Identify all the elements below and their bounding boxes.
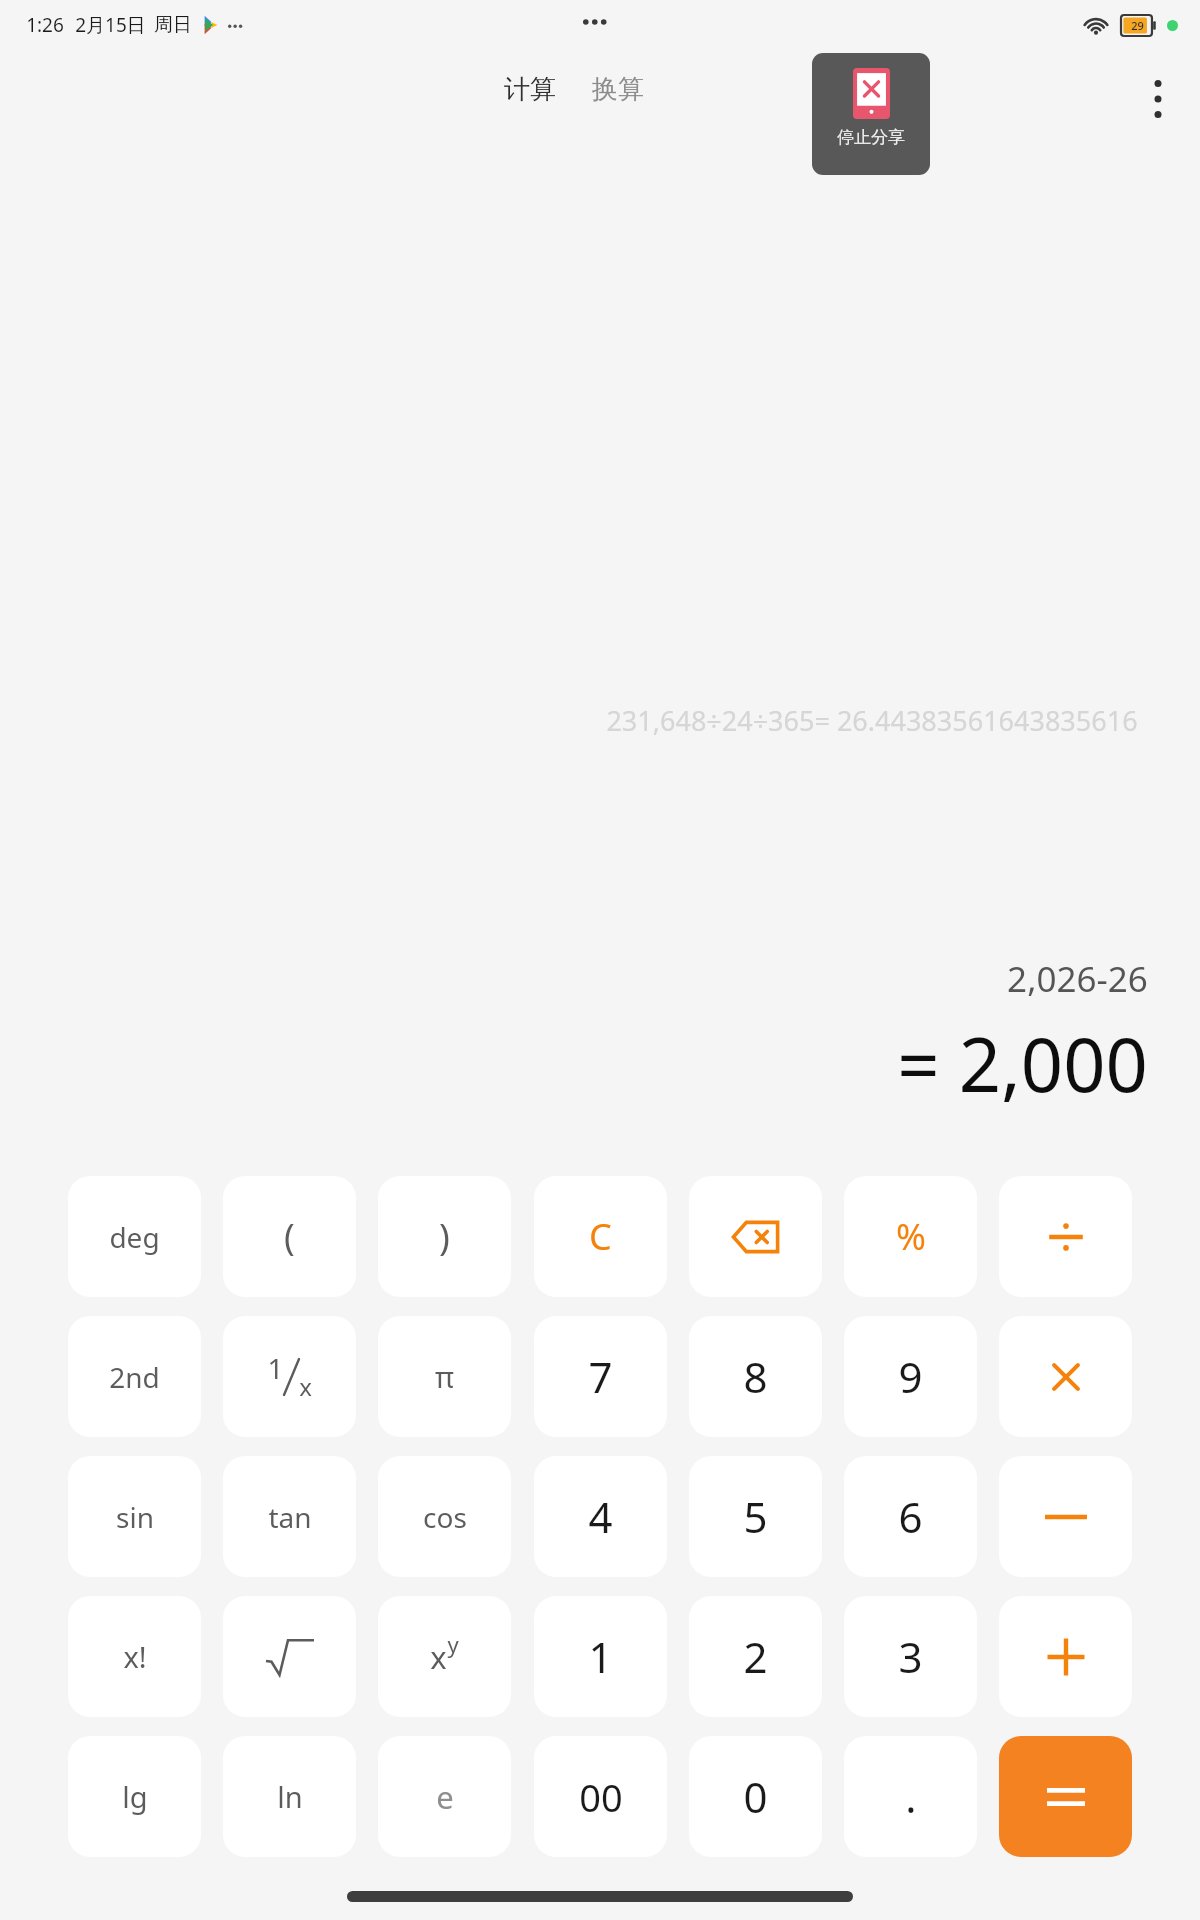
button[interactable]: Add [999, 1596, 1132, 1717]
button[interactable]: Multiply [999, 1316, 1132, 1437]
button[interactable]: Equals [999, 1736, 1132, 1857]
button[interactable]: More options [1116, 53, 1200, 145]
button[interactable]: x! [68, 1596, 201, 1717]
staticText: 9 [898, 1348, 923, 1405]
staticText: % [896, 1212, 926, 1261]
staticText: 5 [743, 1488, 768, 1545]
staticText: cos [423, 1498, 467, 1536]
button[interactable]: 0 [689, 1736, 822, 1857]
button[interactable]: 231,648÷24÷365= 26.44383561643835616 [0, 702, 1200, 739]
staticText: 2,026-26 [1007, 955, 1148, 1003]
staticText: y [447, 1629, 459, 1659]
button[interactable]: lg [68, 1736, 201, 1857]
staticText: 231,648÷24÷365= 26.44383561643835616 [606, 702, 1138, 739]
staticText: deg [109, 1218, 160, 1256]
button[interactable]: 2 [689, 1596, 822, 1717]
staticText: ( [284, 1212, 295, 1261]
staticText: 1:26 [26, 12, 64, 38]
button[interactable]: deg [68, 1176, 201, 1297]
staticText: x! [123, 1637, 147, 1676]
staticText: tan [268, 1498, 312, 1536]
button[interactable]: ) [378, 1176, 511, 1297]
button[interactable]: 1 [534, 1596, 667, 1717]
button[interactable]: e [378, 1736, 511, 1857]
staticText: e [436, 1776, 454, 1818]
button[interactable]: 4 [534, 1456, 667, 1577]
staticText: 6 [898, 1488, 923, 1545]
staticText: 1 [588, 1628, 613, 1685]
staticText: 计算 [504, 73, 556, 106]
button[interactable]: 2nd [68, 1316, 201, 1437]
button[interactable]: 停止分享 [812, 53, 930, 175]
button[interactable]: cos [378, 1456, 511, 1577]
staticText: x [430, 1636, 447, 1678]
button[interactable]: 00 [534, 1736, 667, 1857]
staticText: C [589, 1212, 612, 1261]
button[interactable]: 计算 [496, 63, 564, 116]
staticText: ln [277, 1777, 303, 1816]
staticText: 00 [579, 1771, 623, 1823]
button[interactable]: Percent [844, 1176, 977, 1297]
staticText: 换算 [592, 73, 644, 106]
staticText: 停止分享 [837, 127, 905, 148]
button[interactable]: 5 [689, 1456, 822, 1577]
staticText: 3 [898, 1628, 923, 1685]
button[interactable]: sin [68, 1456, 201, 1577]
button[interactable]: 换算 [584, 63, 652, 116]
staticText: π [435, 1357, 454, 1396]
button[interactable]: . [844, 1736, 977, 1857]
staticText: 0 [743, 1768, 768, 1825]
button[interactable]: 9 [844, 1316, 977, 1437]
staticText: = 2,000 [897, 1013, 1148, 1114]
staticText: 2 [743, 1628, 768, 1685]
button[interactable]: Clear [534, 1176, 667, 1297]
staticText: 8 [743, 1348, 768, 1405]
button[interactable]: 7 [534, 1316, 667, 1437]
button[interactable]: Subtract [999, 1456, 1132, 1577]
button[interactable]: Square root [223, 1596, 356, 1717]
staticText: lg [122, 1777, 148, 1816]
staticText: 7 [588, 1348, 613, 1405]
staticText: 2月15日 [75, 12, 146, 38]
button[interactable]: x to the power y [378, 1596, 511, 1717]
staticText: 29 [1131, 18, 1144, 33]
button[interactable]: One over x [223, 1316, 356, 1437]
button[interactable]: 3 [844, 1596, 977, 1717]
staticText: . [905, 1768, 917, 1825]
staticText: 1 [267, 1349, 284, 1387]
staticText: x [299, 1370, 312, 1403]
button[interactable]: Divide [999, 1176, 1132, 1297]
staticText: 2nd [109, 1358, 160, 1396]
button[interactable]: tan [223, 1456, 356, 1577]
button[interactable]: ln [223, 1736, 356, 1857]
staticText: sin [116, 1498, 154, 1536]
staticText: 4 [588, 1488, 613, 1545]
staticText: 周日 [154, 13, 192, 37]
button[interactable]: 6 [844, 1456, 977, 1577]
button[interactable]: ( [223, 1176, 356, 1297]
staticText: ) [439, 1212, 450, 1261]
button[interactable]: Backspace [689, 1176, 822, 1297]
button[interactable]: π [378, 1316, 511, 1437]
button[interactable]: 8 [689, 1316, 822, 1437]
